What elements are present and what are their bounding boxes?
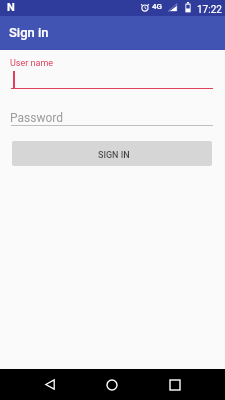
button[interactable]: Password <box>11 108 213 130</box>
staticText: User name <box>10 58 54 69</box>
staticText: Password <box>10 111 64 125</box>
button[interactable]: User name <box>11 56 213 90</box>
staticText: Sign in <box>9 25 49 40</box>
button[interactable]: Back <box>30 369 70 400</box>
staticText: SIGN IN <box>98 150 130 161</box>
button[interactable]: SIGN IN <box>12 141 212 166</box>
staticText: 17:22 <box>197 4 222 16</box>
staticText: N <box>7 1 15 14</box>
staticText: 4G <box>152 2 162 11</box>
button[interactable]: Home <box>92 369 132 400</box>
button[interactable]: Recents <box>155 369 195 400</box>
